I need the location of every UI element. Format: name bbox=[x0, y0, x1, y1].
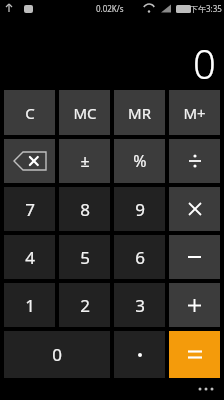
staticText: 0 bbox=[52, 343, 62, 366]
button[interactable]: Multiply bbox=[169, 187, 220, 231]
button[interactable]: MC bbox=[59, 90, 110, 135]
button[interactable]: Decimal point bbox=[114, 331, 165, 378]
button[interactable]: 2 bbox=[59, 283, 110, 327]
button[interactable]: Equals bbox=[169, 331, 220, 378]
button[interactable]: Plus bbox=[169, 283, 220, 327]
button[interactable]: 6 bbox=[114, 235, 165, 279]
button[interactable]: 9 bbox=[114, 187, 165, 231]
staticText: 9 bbox=[135, 198, 145, 221]
staticText: 2 bbox=[80, 294, 90, 317]
button[interactable]: Minus bbox=[169, 235, 220, 279]
staticText: 0.02K/s bbox=[96, 3, 124, 14]
button[interactable]: More options bbox=[188, 378, 224, 400]
staticText: 下午3:35 bbox=[190, 3, 222, 14]
staticText: C bbox=[25, 103, 35, 123]
button[interactable]: Divide bbox=[169, 139, 220, 183]
staticText: ± bbox=[80, 150, 90, 172]
staticText: 7 bbox=[25, 198, 35, 221]
button[interactable]: ± bbox=[59, 139, 110, 183]
staticText: 8 bbox=[80, 198, 90, 221]
button[interactable]: MR bbox=[114, 90, 165, 135]
staticText: 4 bbox=[25, 246, 35, 269]
button[interactable]: 4 bbox=[4, 235, 55, 279]
staticText: MC bbox=[73, 103, 97, 123]
button[interactable]: 8 bbox=[59, 187, 110, 231]
button[interactable]: 7 bbox=[4, 187, 55, 231]
button[interactable]: % bbox=[114, 139, 165, 183]
button[interactable]: 1 bbox=[4, 283, 55, 327]
button[interactable]: C bbox=[4, 90, 55, 135]
button[interactable]: 5 bbox=[59, 235, 110, 279]
button[interactable]: M+ bbox=[169, 90, 220, 135]
staticText: 1 bbox=[25, 294, 35, 317]
staticText: 5 bbox=[80, 246, 90, 269]
button[interactable]: 3 bbox=[114, 283, 165, 327]
button[interactable]: Backspace bbox=[4, 139, 55, 183]
staticText: % bbox=[133, 150, 147, 172]
staticText: MR bbox=[128, 103, 151, 123]
staticText: 0 bbox=[193, 36, 216, 90]
staticText: 6 bbox=[135, 246, 145, 269]
staticText: M+ bbox=[183, 103, 206, 123]
button[interactable]: 0 bbox=[4, 331, 110, 378]
staticText: 3 bbox=[135, 294, 145, 317]
